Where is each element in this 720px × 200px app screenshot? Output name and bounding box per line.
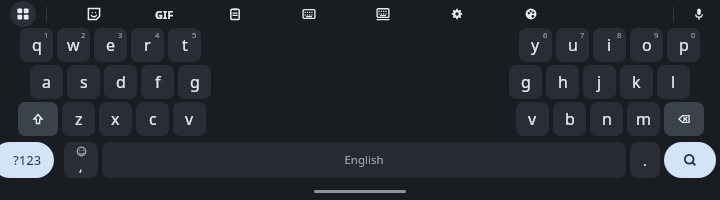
staticText: m xyxy=(636,108,651,130)
staticText: 0 xyxy=(691,30,696,40)
staticText: g xyxy=(521,71,531,93)
button[interactable]: g xyxy=(178,65,211,99)
button[interactable]: d xyxy=(104,65,137,99)
staticText: k xyxy=(632,71,641,93)
button[interactable]: Clipboard xyxy=(222,1,248,27)
staticText: u xyxy=(568,34,578,56)
staticText: j xyxy=(597,71,602,93)
staticText: s xyxy=(80,71,88,93)
staticText: i xyxy=(607,34,612,56)
staticText: b xyxy=(565,108,575,130)
staticText: 6 xyxy=(543,30,548,40)
staticText: x xyxy=(111,108,120,130)
button[interactable]: Settings xyxy=(444,1,470,27)
button[interactable]: z xyxy=(62,102,95,136)
staticText: l xyxy=(671,71,676,93)
button[interactable]: t xyxy=(168,28,201,62)
button[interactable]: p xyxy=(667,28,700,62)
button[interactable]: Backspace xyxy=(664,102,704,136)
button[interactable]: v xyxy=(516,102,549,136)
button[interactable]: English xyxy=(102,142,626,178)
staticText: e xyxy=(106,34,116,56)
button[interactable]: Floating keyboard xyxy=(370,1,396,27)
button[interactable]: b xyxy=(553,102,586,136)
staticText: 7 xyxy=(580,30,585,40)
staticText: , xyxy=(79,157,83,175)
staticText: w xyxy=(67,34,80,56)
staticText: . xyxy=(643,151,647,170)
button[interactable]: h xyxy=(546,65,579,99)
staticText: z xyxy=(75,108,83,130)
button[interactable]: k xyxy=(620,65,653,99)
button[interactable]: u xyxy=(556,28,589,62)
staticText: 2 xyxy=(81,30,86,40)
staticText: c xyxy=(149,108,157,130)
button[interactable]: Stickers xyxy=(81,1,107,27)
staticText: 3 xyxy=(118,30,123,40)
button[interactable]: Search xyxy=(664,142,716,178)
button[interactable]: i xyxy=(593,28,626,62)
button[interactable]: GIF xyxy=(155,1,174,27)
button[interactable]: Themes xyxy=(518,1,544,27)
staticText: r xyxy=(144,34,151,56)
button[interactable]: o xyxy=(630,28,663,62)
staticText: v xyxy=(528,108,537,130)
staticText: 9 xyxy=(654,30,659,40)
button[interactable]: g xyxy=(509,65,542,99)
button[interactable]: a xyxy=(30,65,63,99)
button[interactable]: s xyxy=(67,65,100,99)
button[interactable]: m xyxy=(627,102,660,136)
staticText: q xyxy=(32,34,42,56)
button[interactable]: y xyxy=(519,28,552,62)
button[interactable]: Comma, emoji xyxy=(64,142,98,178)
staticText: g xyxy=(190,71,200,93)
staticText: 1 xyxy=(44,30,49,40)
button[interactable]: e xyxy=(94,28,127,62)
button[interactable]: Open features menu xyxy=(10,1,36,27)
staticText: h xyxy=(558,71,568,93)
staticText: p xyxy=(679,34,689,56)
staticText: y xyxy=(531,34,540,56)
button[interactable]: One handed mode xyxy=(296,1,322,27)
button[interactable]: w xyxy=(57,28,90,62)
staticText: v xyxy=(185,108,194,130)
button[interactable]: l xyxy=(657,65,690,99)
staticText: n xyxy=(602,108,612,130)
button[interactable]: ?123 xyxy=(0,142,54,178)
staticText: ?123 xyxy=(13,151,42,169)
staticText: a xyxy=(42,71,51,93)
button[interactable]: Voice input xyxy=(686,1,712,27)
staticText: 5 xyxy=(192,30,197,40)
button[interactable]: x xyxy=(99,102,132,136)
button[interactable]: Period xyxy=(630,142,660,178)
staticText: f xyxy=(155,71,161,93)
button[interactable]: f xyxy=(141,65,174,99)
button[interactable]: j xyxy=(583,65,616,99)
staticText: 4 xyxy=(155,30,160,40)
button[interactable]: v xyxy=(173,102,206,136)
staticText: GIF xyxy=(155,7,174,22)
staticText: 8 xyxy=(617,30,622,40)
button[interactable]: Shift xyxy=(18,102,58,136)
staticText: t xyxy=(182,34,188,56)
button[interactable]: c xyxy=(136,102,169,136)
staticText: o xyxy=(642,34,652,56)
button[interactable]: n xyxy=(590,102,623,136)
button[interactable]: q xyxy=(20,28,53,62)
staticText: d xyxy=(116,71,126,93)
button[interactable]: r xyxy=(131,28,164,62)
staticText: English xyxy=(344,152,384,168)
